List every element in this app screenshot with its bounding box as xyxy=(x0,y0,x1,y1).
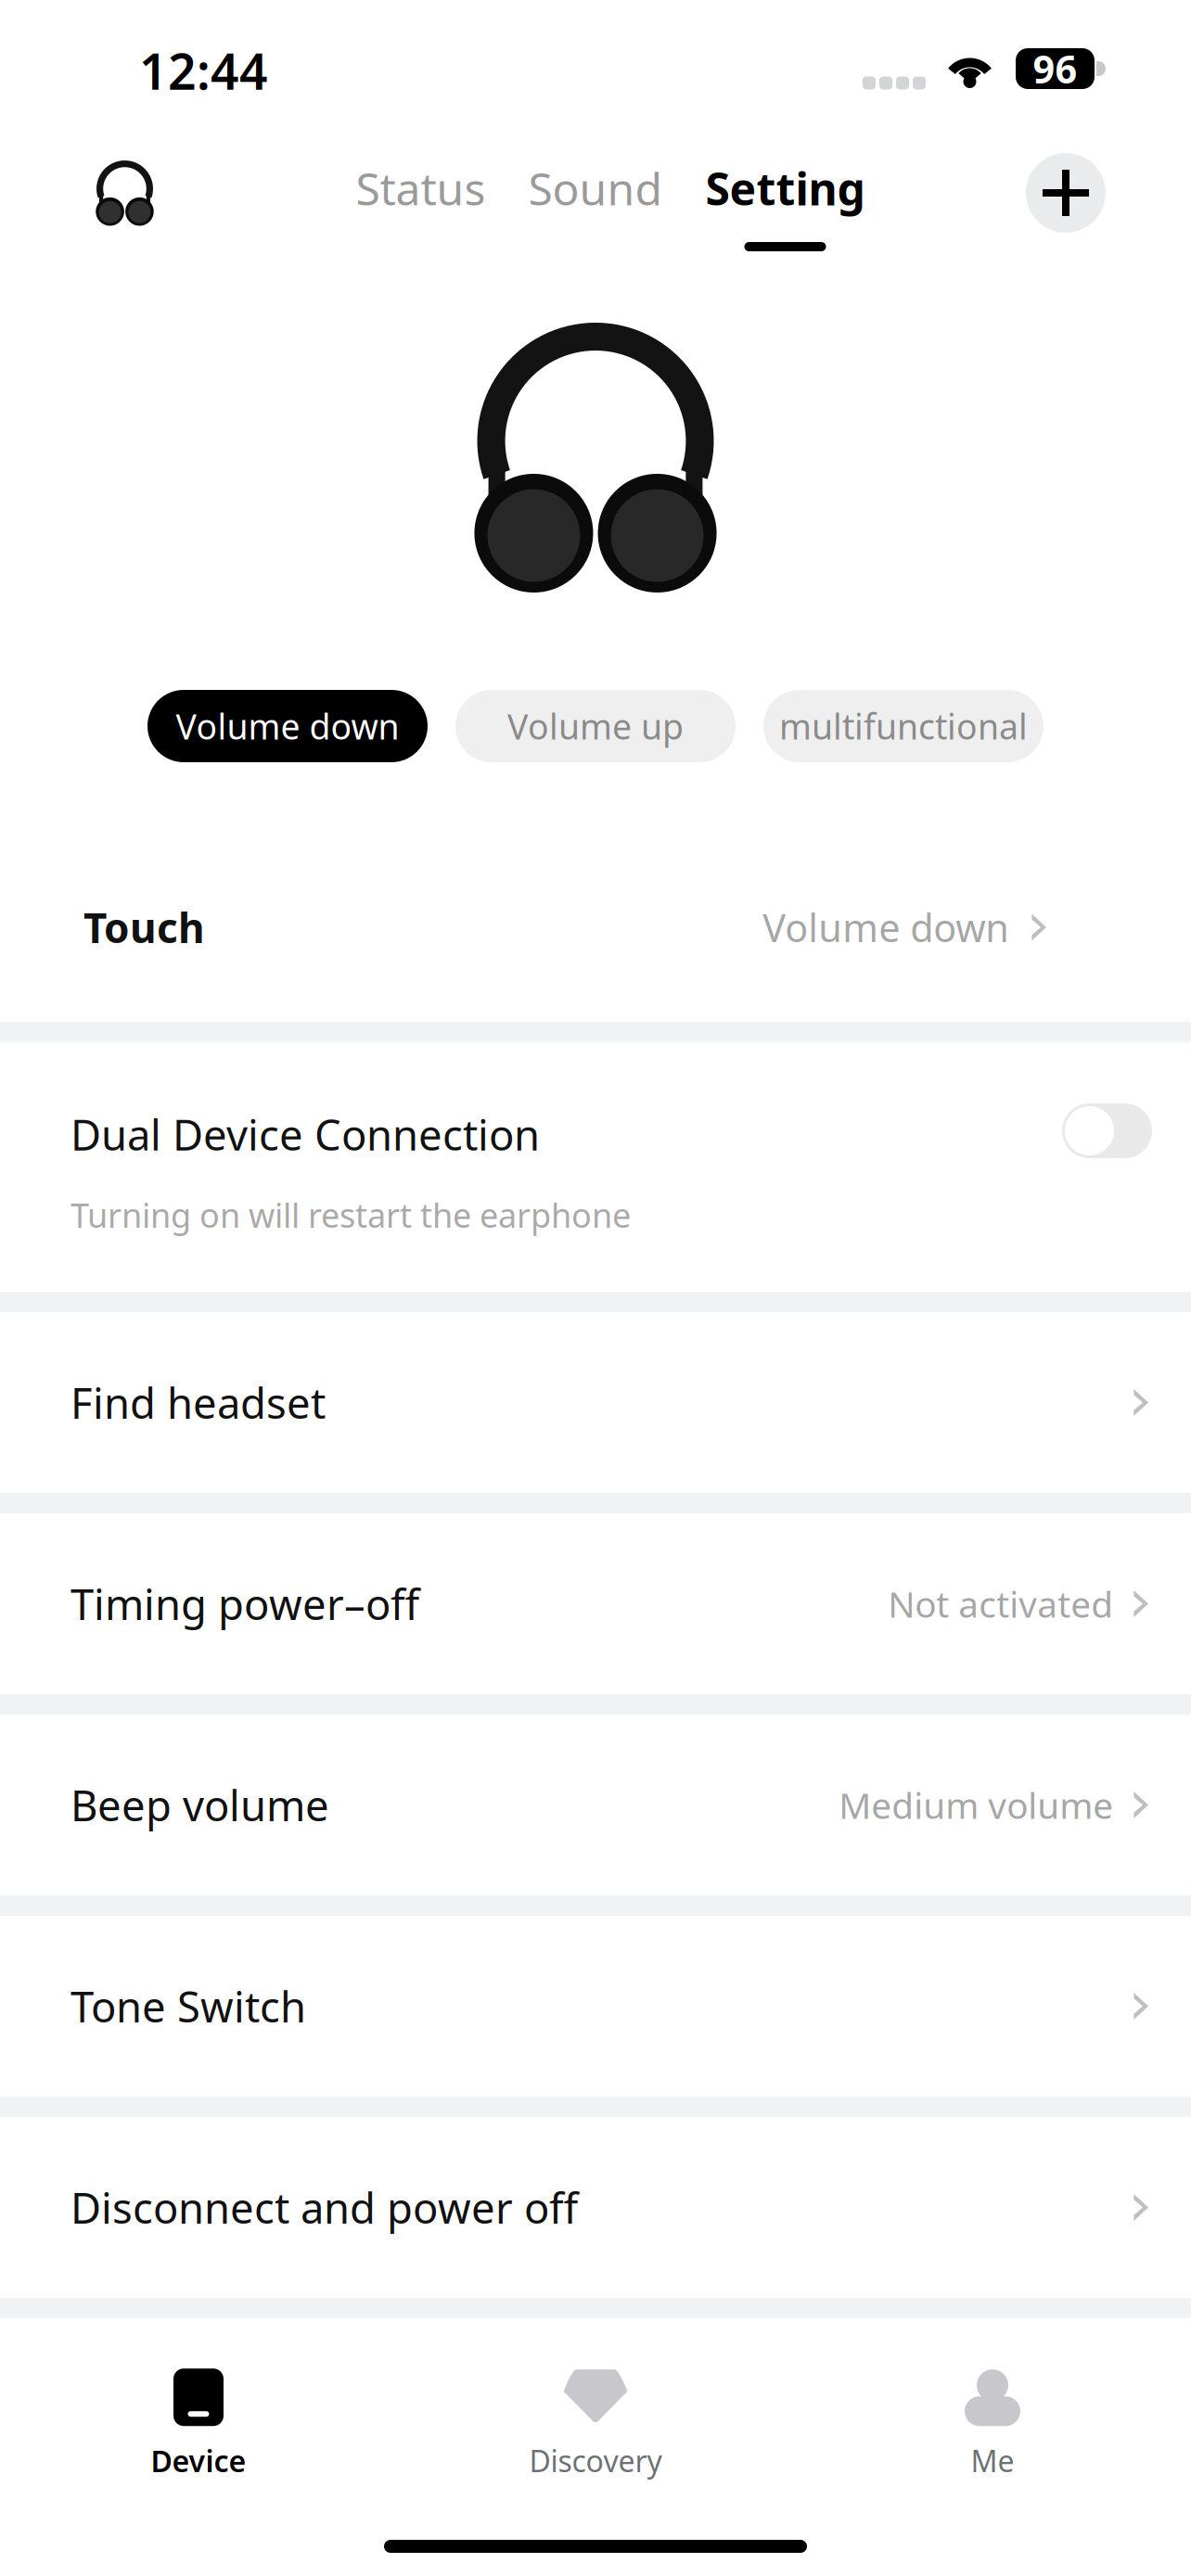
staticText: Turning on will restart the earphone xyxy=(70,1193,631,1237)
button[interactable]: Add device xyxy=(1026,153,1106,233)
button[interactable]: Volume down xyxy=(147,690,428,762)
button[interactable]: Discovery xyxy=(397,2339,794,2510)
staticText: Setting xyxy=(705,159,865,218)
staticText: Disconnect and power off xyxy=(70,2179,578,2235)
staticText: Status xyxy=(356,159,486,218)
button[interactable]: Sound xyxy=(507,155,684,222)
button[interactable]: Volume up xyxy=(455,690,736,762)
staticText: Volume down xyxy=(176,703,399,749)
staticText: Medium volume xyxy=(839,1781,1113,1829)
button[interactable]: Touch xyxy=(0,833,1191,1022)
button[interactable]: multifunctional xyxy=(763,690,1044,762)
staticText: Dual Device Connection xyxy=(70,1106,540,1162)
button[interactable]: Dual Device Connection xyxy=(0,1042,1191,1292)
staticText: Find headset xyxy=(70,1375,326,1430)
button[interactable]: Disconnect and power off xyxy=(0,2117,1191,2298)
button[interactable]: Device xyxy=(0,2339,397,2510)
staticText: Tone Switch xyxy=(70,1978,306,2034)
button[interactable]: Setting xyxy=(684,155,886,251)
staticText: multifunctional xyxy=(779,703,1028,749)
staticText: Not activated xyxy=(888,1580,1113,1627)
staticText: 96 xyxy=(1033,43,1077,94)
button[interactable]: Connected device xyxy=(0,133,175,253)
staticText: Volume up xyxy=(507,703,684,749)
staticText: Volume down xyxy=(763,902,1009,953)
staticText: Touch xyxy=(83,900,205,954)
staticText: Discovery xyxy=(529,2441,662,2480)
button[interactable]: Me xyxy=(794,2339,1191,2510)
button[interactable]: Beep volume xyxy=(0,1715,1191,1895)
button[interactable]: Status xyxy=(334,155,507,222)
button[interactable]: Find headset xyxy=(0,1312,1191,1493)
staticText: Beep volume xyxy=(70,1777,329,1833)
button[interactable]: Tone Switch xyxy=(0,1916,1191,2097)
staticText: 12:44 xyxy=(139,38,268,103)
button[interactable]: Timing power–off xyxy=(0,1513,1191,1694)
staticText: Me xyxy=(971,2441,1014,2480)
staticText: Timing power–off xyxy=(70,1576,419,1632)
staticText: Sound xyxy=(528,159,663,218)
staticText: Device xyxy=(151,2441,246,2480)
